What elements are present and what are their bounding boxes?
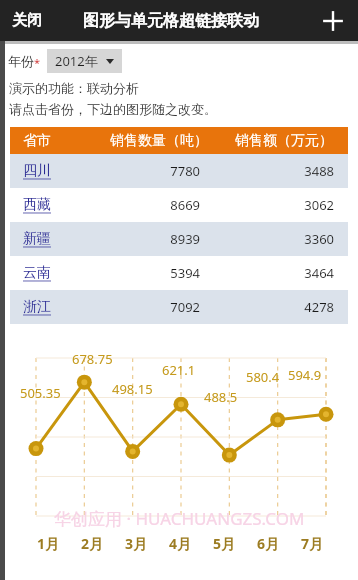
- button[interactable]: 关闭: [4, 3, 50, 38]
- button[interactable]: 新疆: [10, 222, 348, 256]
- button[interactable]: 云南: [10, 256, 348, 290]
- staticText: 505.35: [20, 384, 61, 402]
- staticText: 华创应用 · HUACHUANGZS.COM: [54, 507, 305, 530]
- staticText: 销售数量（吨）: [96, 132, 222, 150]
- staticText: 7月: [290, 534, 334, 553]
- staticText: 浙江: [23, 298, 96, 316]
- button[interactable]: 2012年: [47, 49, 122, 73]
- staticText: 488.5: [204, 388, 238, 406]
- staticText: 西藏: [23, 196, 96, 214]
- staticText: 1月: [26, 534, 70, 553]
- staticText: 5月: [202, 534, 246, 553]
- staticText: 2月: [70, 534, 114, 553]
- staticText: 演示的功能：联动分析: [9, 80, 139, 96]
- staticText: 销售额（万元）: [222, 132, 346, 150]
- staticText: 6月: [246, 534, 290, 553]
- staticText: 请点击省份，下边的图形随之改变。: [9, 101, 217, 117]
- button[interactable]: Add: [316, 4, 350, 38]
- staticText: 594.9: [288, 366, 322, 384]
- staticText: 新疆: [23, 230, 96, 248]
- staticText: 2012年: [55, 52, 98, 70]
- staticText: 年份: [8, 53, 34, 69]
- staticText: 省市: [23, 132, 96, 150]
- staticText: 621.1: [162, 361, 196, 379]
- staticText: 关闭: [12, 11, 42, 30]
- staticText: 3488: [222, 162, 334, 180]
- staticText: 7092: [96, 298, 200, 316]
- staticText: 3464: [222, 264, 334, 282]
- staticText: 四川: [23, 162, 96, 180]
- button[interactable]: 四川: [10, 154, 348, 188]
- staticText: 580.4: [246, 368, 280, 386]
- staticText: 7780: [96, 162, 200, 180]
- staticText: 5394: [96, 264, 200, 282]
- staticText: 8669: [96, 196, 200, 214]
- staticText: 3360: [222, 230, 334, 248]
- staticText: 678.75: [72, 350, 113, 368]
- staticText: 4278: [222, 298, 334, 316]
- staticText: 图形与单元格超链接联动: [83, 11, 259, 31]
- staticText: 4月: [158, 534, 202, 553]
- staticText: 498.15: [112, 380, 153, 398]
- staticText: 3062: [222, 196, 334, 214]
- staticText: 8939: [96, 230, 200, 248]
- button[interactable]: 西藏: [10, 188, 348, 222]
- staticText: 3月: [114, 534, 158, 553]
- button[interactable]: 浙江: [10, 290, 348, 324]
- staticText: 云南: [23, 264, 96, 282]
- staticText: *: [34, 55, 41, 70]
